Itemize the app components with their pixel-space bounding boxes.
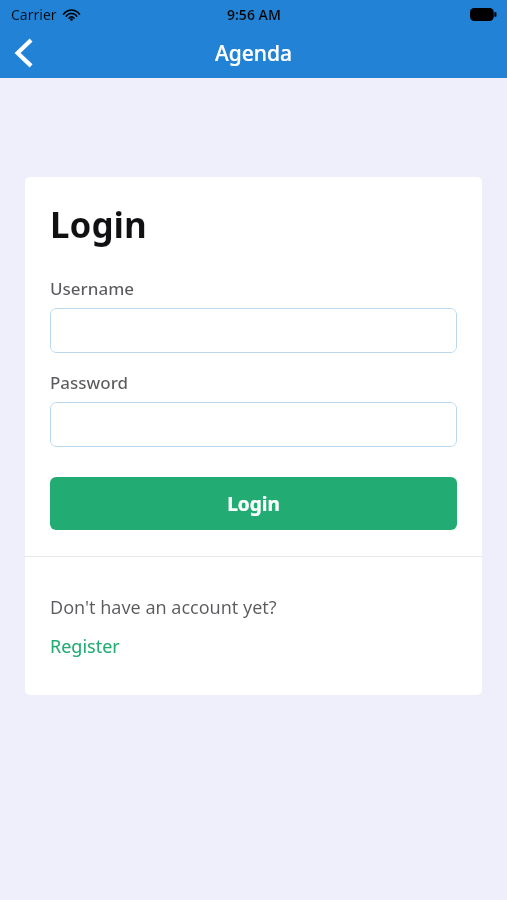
staticText: Login bbox=[50, 201, 147, 249]
staticText: Agenda bbox=[215, 39, 293, 68]
staticText: Username bbox=[50, 277, 134, 300]
button[interactable]: Text field bbox=[50, 308, 457, 353]
staticText: Password bbox=[50, 371, 129, 394]
button[interactable]: Login bbox=[50, 477, 457, 530]
staticText: Carrier bbox=[11, 5, 57, 24]
button[interactable]: Text field bbox=[50, 402, 457, 447]
staticText: Don't have an account yet? bbox=[50, 595, 277, 620]
button[interactable]: Register bbox=[50, 634, 120, 659]
staticText: 9:56 AM bbox=[227, 5, 281, 24]
staticText: Register bbox=[50, 634, 120, 659]
staticText: Login bbox=[227, 491, 280, 517]
button[interactable]: Back bbox=[0, 29, 48, 77]
